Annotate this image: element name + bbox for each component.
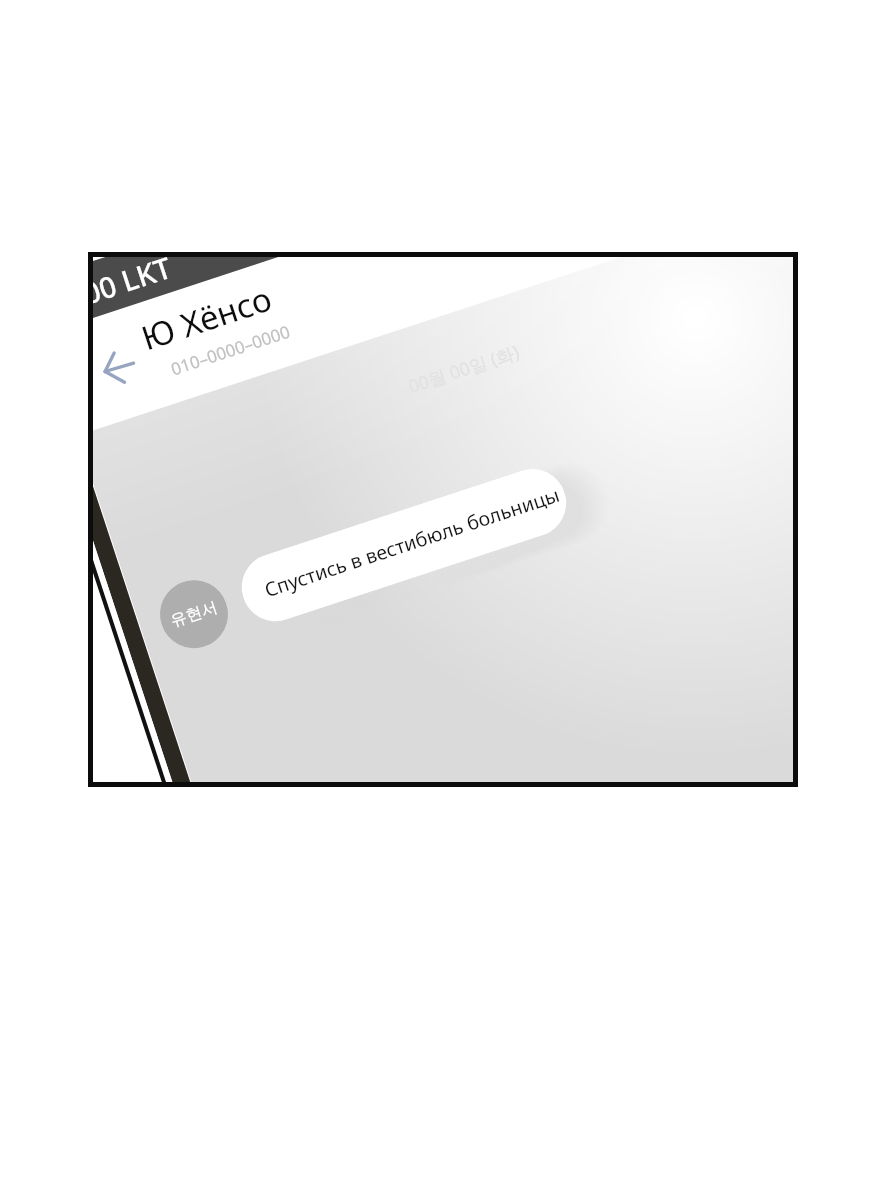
staticText: 010–0000–0000 [168,320,293,380]
button[interactable]: 유현서 [151,571,237,657]
staticText: Спустись в вестибюль больницы [261,481,563,603]
staticText: 10:00 LKT [93,257,176,325]
staticText: Ю Хёнсо [135,275,278,360]
staticText: 유현서 [168,597,220,631]
staticText: 00월 00일 (화) [405,339,523,399]
button[interactable]: Back [93,341,144,390]
button[interactable]: Спустись в вестибюль больницы [233,460,575,630]
